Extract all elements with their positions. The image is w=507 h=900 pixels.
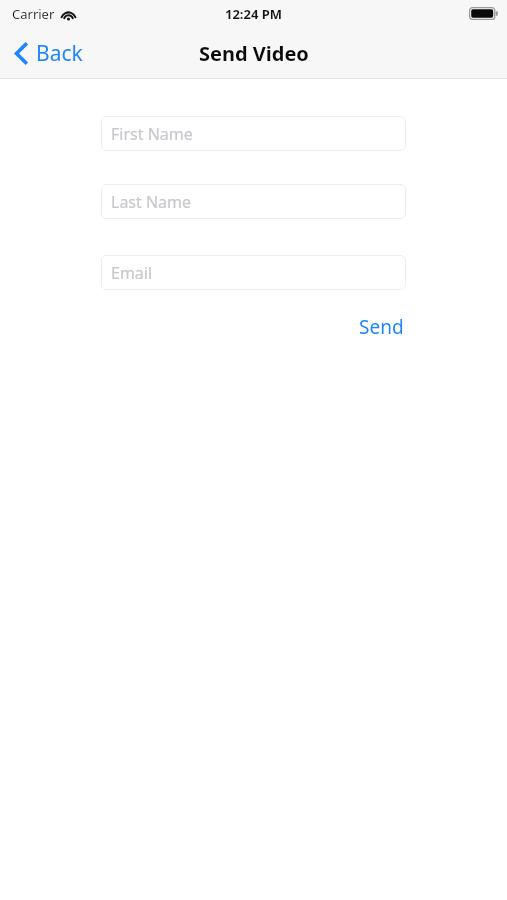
staticText: Last Name: [111, 191, 192, 213]
staticText: Back: [36, 39, 83, 68]
staticText: Send: [359, 314, 404, 340]
button[interactable]: Email: [101, 255, 406, 290]
button[interactable]: Send: [353, 308, 410, 346]
other: Battery full: [469, 7, 499, 20]
staticText: Carrier: [12, 5, 55, 23]
other: Wi-Fi signal: [61, 8, 76, 20]
button[interactable]: First Name: [101, 116, 406, 151]
staticText: Email: [111, 262, 153, 284]
other: Back: [14, 41, 29, 66]
button[interactable]: Back: [0, 33, 93, 74]
button[interactable]: Last Name: [101, 184, 406, 219]
staticText: First Name: [111, 123, 193, 145]
staticText: 12:24 PM: [225, 5, 283, 23]
staticText: Send Video: [199, 40, 309, 67]
